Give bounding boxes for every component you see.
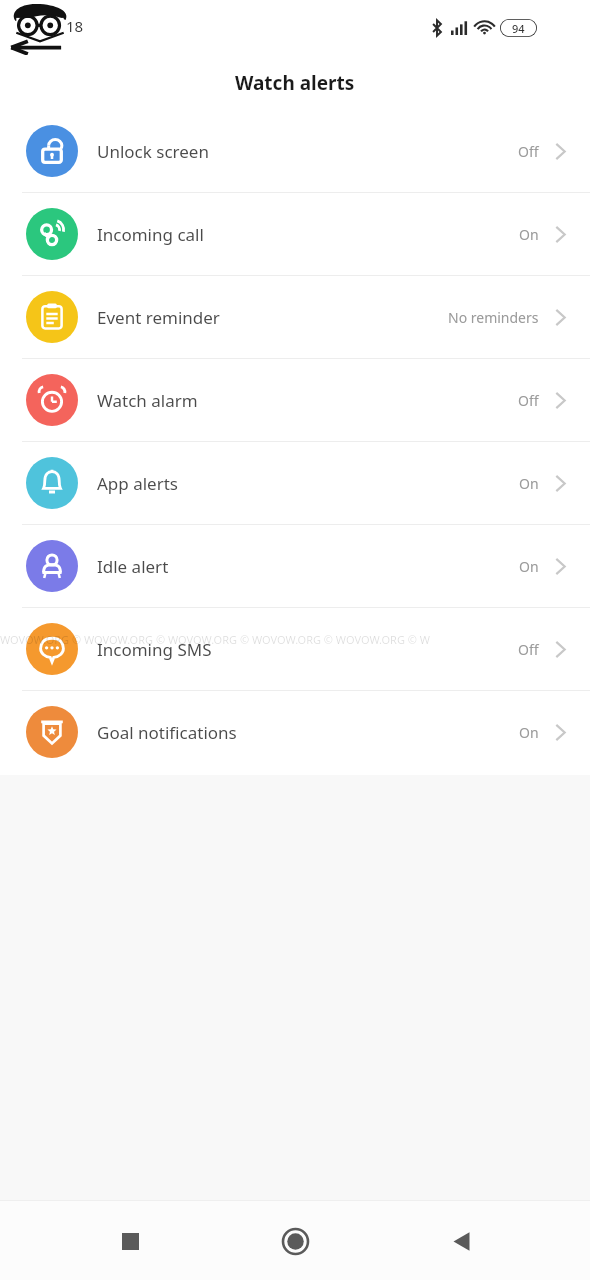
- button[interactable]: Recent apps: [94, 1205, 166, 1277]
- button[interactable]: Event reminder: [0, 276, 590, 358]
- staticText: Goal notifications: [97, 721, 237, 744]
- staticText: Watch alerts: [235, 70, 355, 96]
- staticText: Off: [518, 640, 539, 659]
- button[interactable]: App alerts: [0, 442, 590, 524]
- staticText: On: [519, 557, 539, 576]
- staticText: On: [519, 723, 539, 742]
- staticText: On: [519, 474, 539, 493]
- staticText: Unlock screen: [97, 140, 209, 163]
- button[interactable]: Watch alarm: [0, 359, 590, 441]
- staticText: Idle alert: [97, 555, 169, 578]
- staticText: Incoming call: [97, 223, 204, 246]
- staticText: No reminders: [448, 308, 539, 327]
- button[interactable]: Back: [425, 1205, 497, 1277]
- staticText: App alerts: [97, 472, 179, 495]
- button[interactable]: Idle alert: [0, 525, 590, 607]
- button[interactable]: Goal notifications: [0, 691, 590, 773]
- staticText: 18: [66, 16, 84, 36]
- staticText: 94: [512, 21, 525, 36]
- staticText: Off: [518, 142, 539, 161]
- button[interactable]: Home: [259, 1205, 331, 1277]
- staticText: WOVOW.ORG © WOVOW.ORG © WOVOW.ORG © WOVO…: [0, 632, 431, 647]
- button[interactable]: Unlock screen: [0, 110, 590, 192]
- staticText: Incoming SMS: [97, 638, 212, 661]
- staticText: Event reminder: [97, 306, 220, 329]
- button[interactable]: Incoming SMS: [0, 608, 590, 690]
- staticText: Watch alarm: [97, 389, 198, 412]
- staticText: On: [519, 225, 539, 244]
- staticText: Off: [518, 391, 539, 410]
- button[interactable]: Incoming call: [0, 193, 590, 275]
